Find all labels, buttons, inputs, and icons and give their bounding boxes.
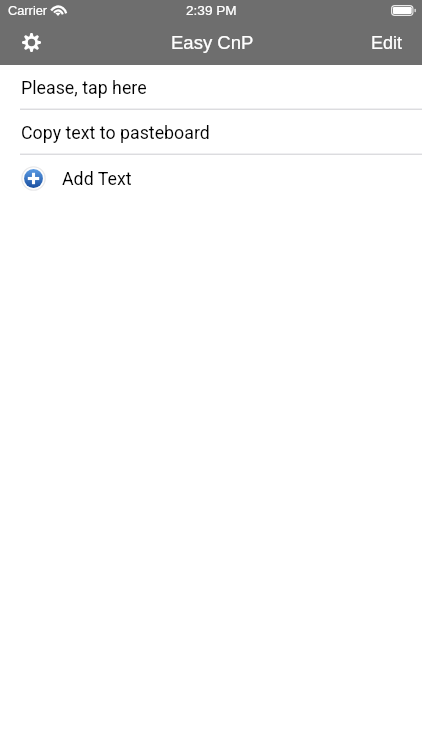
staticText: Please, tap here [21, 77, 147, 98]
button[interactable]: Add Text [0, 155, 422, 201]
staticText: 2:39 PM [186, 3, 237, 18]
staticText: Carrier [8, 3, 48, 17]
staticText: Easy CnP [171, 32, 254, 53]
button[interactable]: Copy text to pasteboard [0, 110, 422, 155]
button[interactable]: Please, tap here [0, 65, 422, 110]
staticText: Add Text [62, 168, 132, 189]
staticText: Copy text to pasteboard [21, 122, 210, 143]
button[interactable]: Edit [352, 20, 422, 65]
staticText: Edit [371, 33, 403, 53]
button[interactable]: Settings [0, 20, 62, 65]
